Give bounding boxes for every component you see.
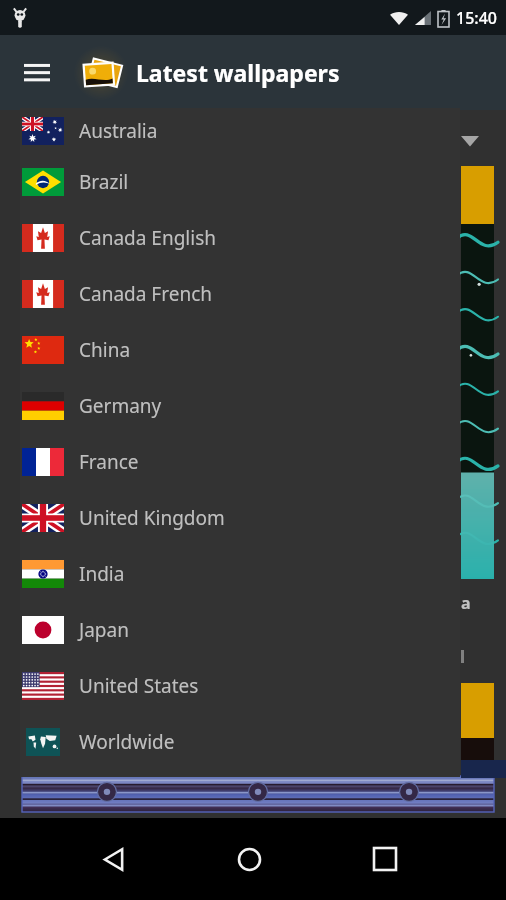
button[interactable]: China bbox=[20, 322, 460, 378]
button[interactable]: United States bbox=[20, 658, 460, 714]
staticText: Germany bbox=[79, 393, 162, 419]
button[interactable]: Brazil bbox=[20, 154, 460, 210]
button[interactable]: Home bbox=[218, 828, 280, 890]
button[interactable]: United Kingdom bbox=[20, 490, 460, 546]
staticText: Canada English bbox=[79, 225, 216, 251]
staticText: France bbox=[79, 449, 139, 475]
staticText: Worldwide bbox=[79, 729, 175, 755]
staticText: Canada French bbox=[79, 281, 213, 307]
button[interactable]: Canada French bbox=[20, 266, 460, 322]
staticText: a bbox=[461, 592, 471, 614]
button[interactable]: Canada English bbox=[20, 210, 460, 266]
button[interactable]: India bbox=[20, 546, 460, 602]
staticText: Latest wallpapers bbox=[136, 57, 340, 88]
staticText: 15:40 bbox=[456, 7, 497, 29]
button[interactable]: Germany bbox=[20, 378, 460, 434]
staticText: Japan bbox=[79, 617, 129, 643]
staticText: Brazil bbox=[79, 169, 129, 195]
button[interactable]: Open navigation drawer bbox=[10, 46, 64, 100]
button[interactable]: Australia bbox=[20, 108, 460, 154]
button[interactable]: Japan bbox=[20, 602, 460, 658]
button[interactable]: Worldwide bbox=[20, 714, 460, 770]
staticText: India bbox=[79, 561, 125, 587]
staticText: Australia bbox=[79, 118, 158, 144]
button[interactable]: France bbox=[20, 434, 460, 490]
staticText: China bbox=[79, 337, 131, 363]
staticText: United States bbox=[79, 673, 199, 699]
staticText: United Kingdom bbox=[79, 505, 225, 531]
button[interactable]: Recent apps bbox=[354, 828, 416, 890]
button[interactable]: Back bbox=[82, 828, 144, 890]
